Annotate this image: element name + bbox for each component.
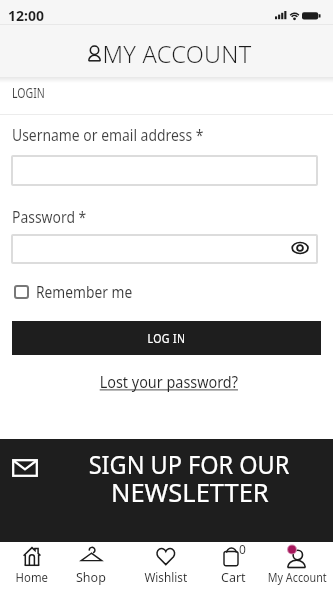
- staticText: My Account: [268, 569, 327, 586]
- button[interactable]: [11, 234, 318, 264]
- staticText: Cart: [221, 569, 246, 586]
- staticText: LOGIN: [12, 84, 45, 102]
- staticText: Username or email address *: [12, 124, 204, 146]
- staticText: Remember me: [36, 281, 133, 302]
- staticText: MY ACCOUNT: [102, 37, 251, 70]
- staticText: LOG IN: [147, 329, 186, 347]
- staticText: Shop: [76, 569, 106, 586]
- staticText: NEWSLETTER: [111, 475, 269, 510]
- button[interactable]: Home: [0, 542, 68, 592]
- staticText: 0: [239, 541, 246, 557]
- button[interactable]: Wishlist: [130, 542, 202, 592]
- button[interactable]: LOG IN: [12, 321, 321, 355]
- button[interactable]: Shop: [55, 542, 127, 592]
- staticText: Password *: [12, 206, 87, 228]
- button[interactable]: My Account: [261, 542, 333, 592]
- button[interactable]: Lost your password?: [92, 371, 246, 393]
- staticText: SIGN UP FOR OUR: [89, 447, 289, 482]
- staticText: 12:00: [8, 6, 44, 25]
- button[interactable]: SIGN UP FOR OUR: [0, 439, 333, 542]
- staticText: Home: [16, 569, 48, 586]
- button[interactable]: Cart: [197, 542, 269, 592]
- button[interactable]: [11, 155, 318, 186]
- button[interactable]: [14, 285, 29, 299]
- staticText: Wishlist: [144, 569, 188, 586]
